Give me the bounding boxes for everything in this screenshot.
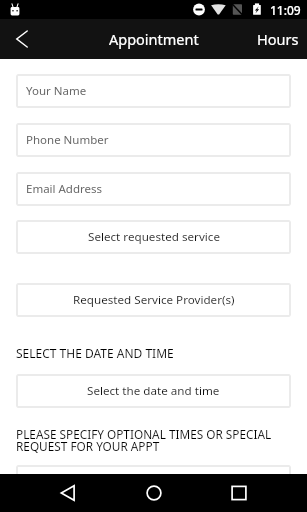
staticText: Email Address	[26, 181, 103, 197]
button[interactable]	[16, 465, 291, 499]
staticText: PLEASE SPECIFY OPTIONAL TIMES OR SPECIAL…	[16, 426, 307, 454]
staticText: Requested Service Provider(s)	[73, 292, 235, 308]
button[interactable]: Requested Service Provider(s)	[16, 283, 291, 317]
button[interactable]: Select requested service	[16, 220, 291, 254]
staticText: Phone Number	[26, 132, 109, 148]
button[interactable]: Recent apps	[215, 474, 263, 512]
button[interactable]: Back	[0, 19, 44, 59]
button[interactable]: Your Name	[16, 74, 291, 108]
staticText: Select requested service	[88, 229, 220, 245]
staticText: 11:09	[270, 2, 301, 18]
button[interactable]: Phone Number	[16, 123, 291, 157]
button[interactable]: Home	[130, 474, 178, 512]
staticText: Appointment	[109, 29, 199, 49]
staticText: Hours	[257, 29, 299, 49]
button[interactable]: Select the date and time	[16, 374, 291, 408]
staticText: Select the date and time	[87, 383, 220, 399]
staticText: SELECT THE DATE AND TIME	[16, 345, 174, 361]
button[interactable]: Hours	[249, 19, 307, 59]
button[interactable]: Email Address	[16, 172, 291, 206]
button[interactable]: Back	[44, 474, 92, 512]
staticText: Your Name	[26, 83, 87, 99]
